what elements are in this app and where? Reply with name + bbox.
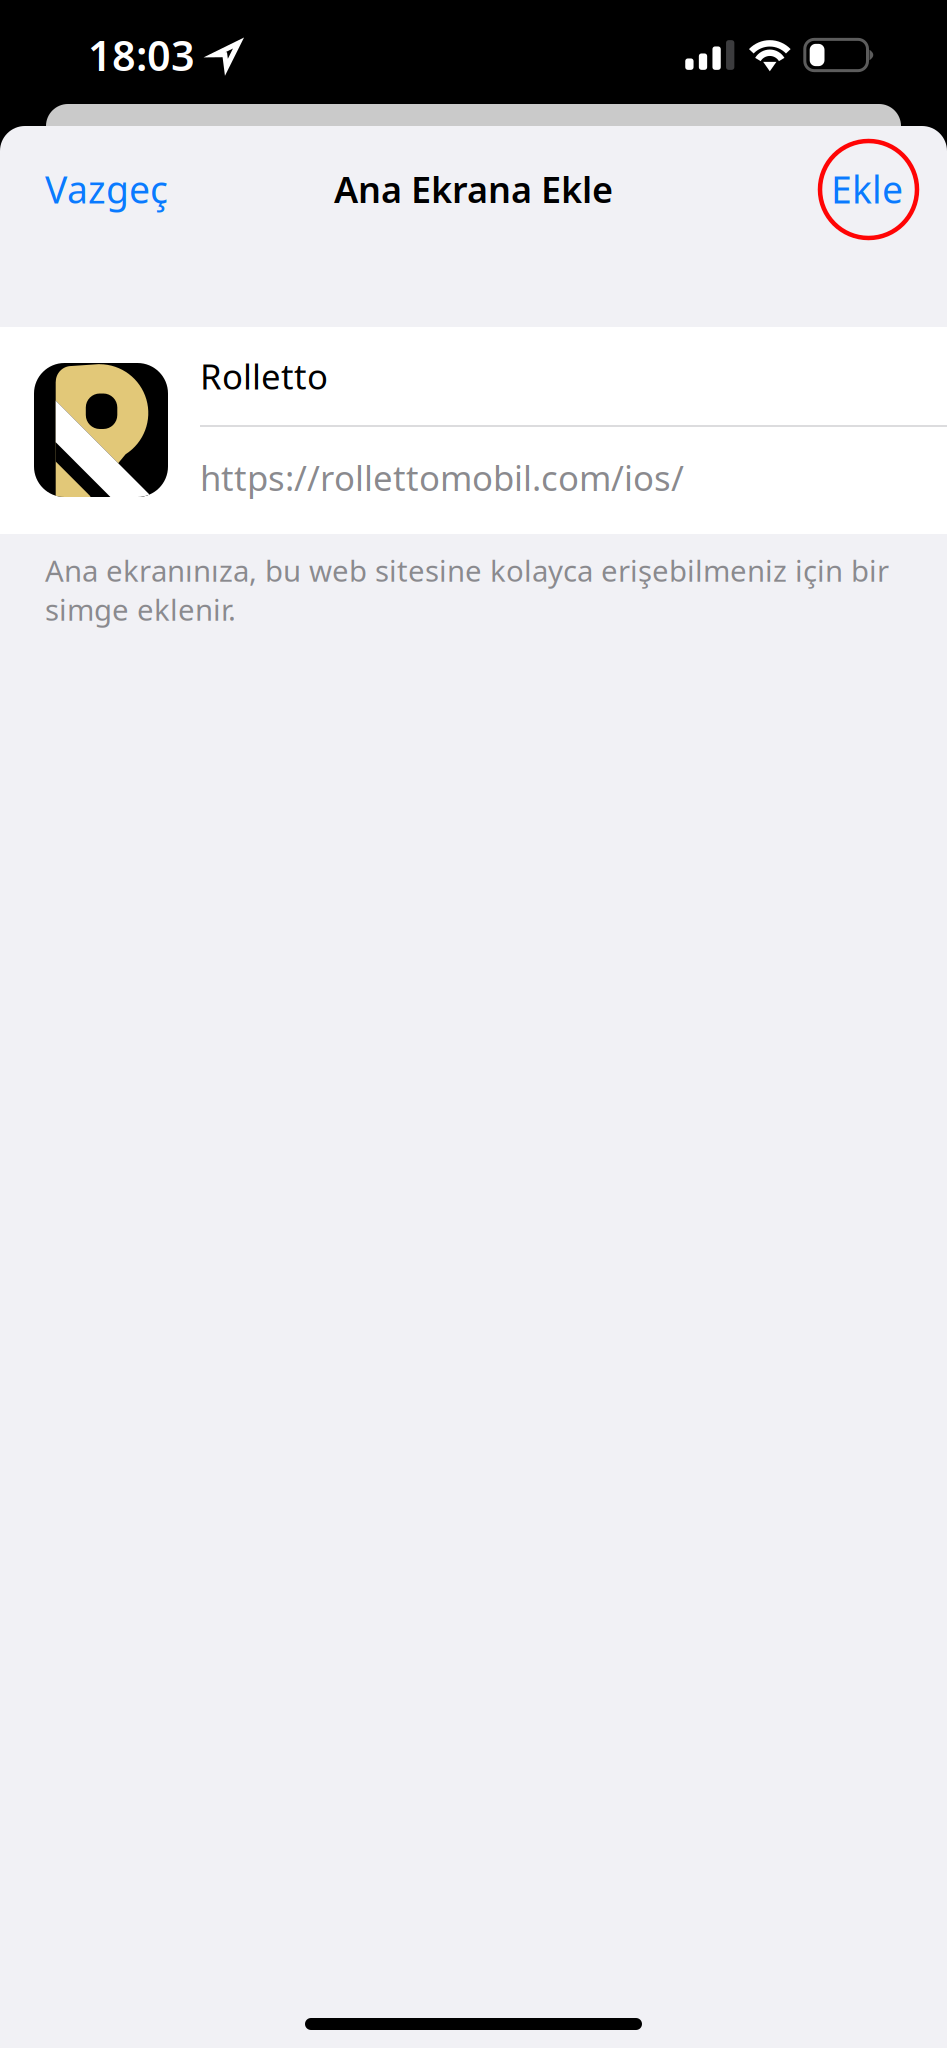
staticText: 18:03 — [88, 28, 195, 82]
staticText: Ekle — [831, 164, 903, 214]
staticText: Ana Ekrana Ekle — [334, 165, 613, 213]
staticText: Rolletto — [200, 353, 328, 399]
staticText: Ana ekranınıza, bu web sitesine kolayca … — [45, 551, 889, 629]
staticText: Vazgeç — [45, 164, 168, 214]
staticText: https://rollettomobil.com/ios/ — [200, 454, 684, 500]
button[interactable]: Ekle — [809, 148, 947, 230]
button[interactable]: Vazgeç — [0, 148, 190, 230]
